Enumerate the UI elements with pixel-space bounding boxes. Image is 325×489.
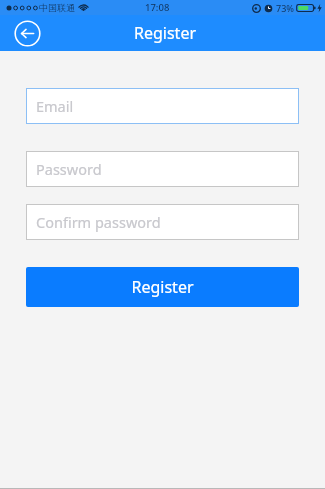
staticText: Register	[134, 22, 197, 44]
staticText: Email	[36, 96, 74, 116]
staticText: Register	[131, 276, 194, 298]
button[interactable]: Password	[26, 151, 299, 187]
button[interactable]: Email	[26, 88, 299, 124]
staticText: Confirm password	[36, 212, 161, 232]
staticText: 中国联通	[39, 2, 75, 13]
staticText: Password	[36, 159, 102, 179]
staticText: 17:08	[145, 1, 170, 14]
button[interactable]: Register	[26, 267, 299, 307]
button[interactable]: Confirm password	[26, 204, 299, 240]
staticText: 73%	[276, 2, 294, 14]
button[interactable]: Back	[14, 20, 41, 47]
